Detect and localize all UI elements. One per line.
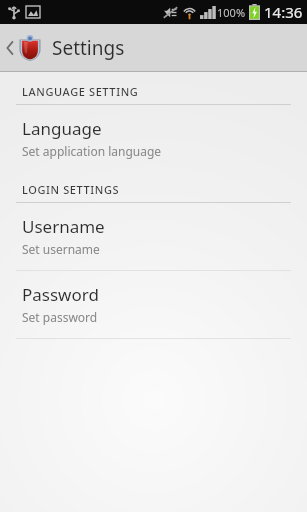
- staticText: Settings: [52, 35, 125, 61]
- staticText: Set password: [22, 309, 98, 325]
- staticText: 100%: [217, 5, 246, 20]
- staticText: LANGUAGE SETTING: [22, 84, 139, 99]
- staticText: LOGIN SETTINGS: [22, 182, 120, 197]
- staticText: Set username: [22, 241, 100, 257]
- staticText: Username: [22, 215, 105, 238]
- staticText: 14:36: [264, 2, 303, 22]
- staticText: Password: [22, 283, 99, 306]
- button[interactable]: Username: [0, 203, 307, 270]
- staticText: Language: [22, 117, 102, 140]
- staticText: Set application language: [22, 143, 162, 159]
- button[interactable]: Navigate up: [0, 24, 307, 71]
- button[interactable]: Password: [0, 271, 307, 338]
- button[interactable]: Language: [0, 105, 307, 172]
